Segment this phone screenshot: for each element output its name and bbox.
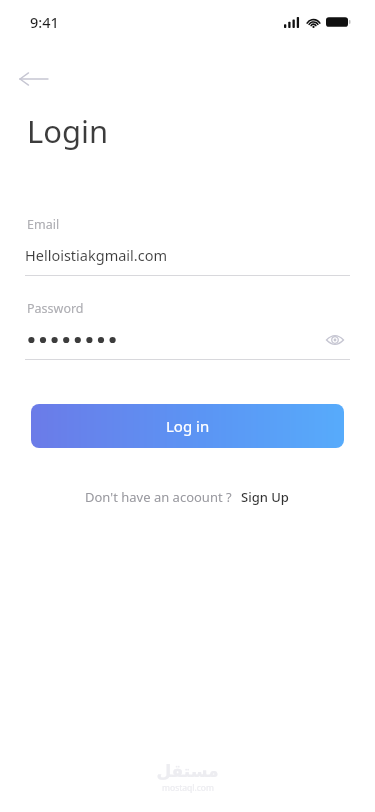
button[interactable]: Helloistiakgmail.com xyxy=(25,245,350,265)
staticText: Password xyxy=(27,300,84,317)
staticText: Sign Up xyxy=(241,488,289,506)
button[interactable]: Log in xyxy=(31,404,344,448)
staticText: Don't have an acoount ? xyxy=(85,488,232,506)
staticText: مستقل xyxy=(156,761,219,781)
staticText: mostaql.com xyxy=(162,782,214,794)
staticText: Log in xyxy=(166,416,210,436)
staticText: 9:41 xyxy=(30,12,59,32)
button[interactable]: Back xyxy=(18,64,64,94)
button[interactable]: Show password xyxy=(25,331,350,349)
staticText: Helloistiakgmail.com xyxy=(25,245,167,265)
staticText: Email xyxy=(27,216,60,233)
button[interactable]: Show password xyxy=(320,331,350,349)
staticText: Login xyxy=(27,110,109,152)
button[interactable]: Sign Up xyxy=(240,486,290,508)
